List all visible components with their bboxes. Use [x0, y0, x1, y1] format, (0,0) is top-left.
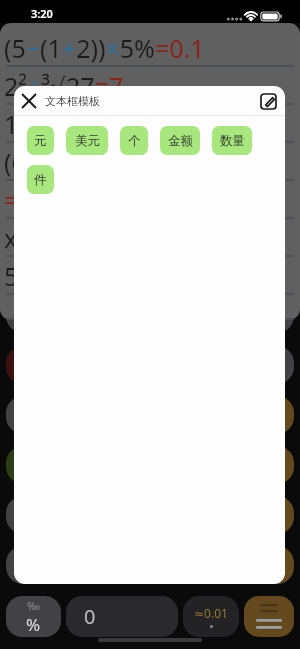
button[interactable]: Key [6, 346, 73, 384]
button[interactable]: Key [6, 396, 73, 434]
staticText: 美元 [75, 133, 100, 149]
button[interactable]: Key [226, 245, 294, 283]
staticText: 个 [128, 133, 141, 149]
button[interactable]: 数量 [212, 126, 252, 155]
button[interactable]: 0 [66, 596, 178, 637]
staticText: ≈0.01 [194, 605, 228, 621]
button[interactable]: Equals [244, 596, 294, 637]
staticText: 1+2×3=7 [4, 107, 105, 141]
staticText: =120 [4, 183, 62, 217]
button[interactable]: 金额 [160, 126, 200, 155]
button[interactable]: Key [226, 295, 294, 333]
staticText: 数量 [220, 133, 245, 149]
button[interactable]: Key [226, 546, 294, 584]
button[interactable]: Key [6, 446, 73, 484]
staticText: 元 [34, 133, 47, 149]
button[interactable]: 个 [120, 126, 148, 155]
button[interactable]: Close [17, 89, 41, 113]
button[interactable]: Key [226, 396, 294, 434]
button[interactable]: Key [6, 295, 73, 333]
button[interactable]: Key [6, 496, 73, 534]
staticText: (6+4)÷2=5 [4, 145, 120, 179]
staticText: 0 [84, 603, 96, 630]
staticText: 2²+³√27=7 [4, 69, 124, 103]
button[interactable]: 元 [27, 126, 54, 155]
button[interactable]: ‰ [6, 596, 61, 637]
button[interactable]: Key [6, 245, 73, 283]
staticText: 金额 [168, 133, 193, 149]
button[interactable]: ≈0.01 [183, 596, 239, 637]
staticText: ‰ [27, 598, 40, 613]
staticText: x=12 [4, 221, 61, 255]
staticText: 3:20 [31, 6, 53, 21]
staticText: (5−(1+2))×5%=0.1 [4, 31, 205, 65]
button[interactable]: Key [6, 546, 73, 584]
staticText: 文本框模板 [45, 94, 100, 108]
staticText: 件 [34, 172, 47, 188]
button[interactable]: Key [226, 496, 294, 534]
button[interactable]: Edit [257, 90, 279, 112]
button[interactable]: 美元 [66, 126, 108, 155]
staticText: % [26, 613, 41, 636]
staticText: 5×6=30 [4, 259, 90, 293]
button[interactable]: Key [226, 346, 294, 384]
button[interactable]: 件 [27, 165, 54, 194]
button[interactable]: Key [226, 446, 294, 484]
